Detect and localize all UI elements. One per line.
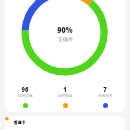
button[interactable]: 1 bbox=[45, 85, 85, 108]
staticText: 7 bbox=[103, 85, 107, 93]
staticText: 回答错误 bbox=[58, 94, 73, 99]
staticText: 答题卡 bbox=[14, 120, 26, 126]
staticText: 90% bbox=[57, 23, 73, 35]
button[interactable]: 7 bbox=[85, 85, 125, 108]
button[interactable]: Answer sheet bbox=[5, 116, 125, 130]
staticText: 没有作答 bbox=[98, 94, 113, 99]
staticText: 1 bbox=[63, 85, 67, 93]
staticText: 96 bbox=[21, 85, 29, 93]
staticText: 正确率 bbox=[58, 36, 73, 42]
button[interactable]: 96 bbox=[5, 85, 45, 108]
staticText: 回答正确 bbox=[18, 94, 33, 99]
other: Answer sheet bbox=[5, 116, 15, 126]
